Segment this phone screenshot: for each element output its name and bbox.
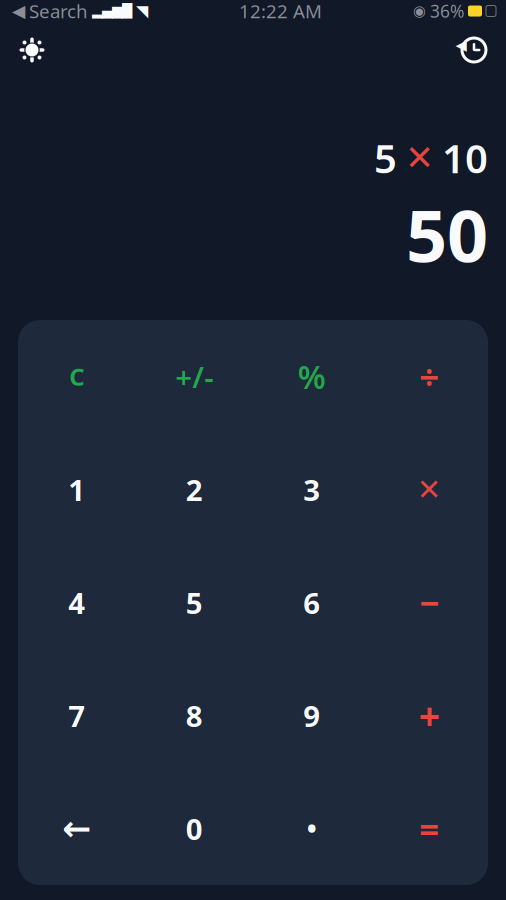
button[interactable]: Seven <box>18 659 135 772</box>
staticText: 7 <box>68 696 85 735</box>
staticText: ✕ <box>405 138 434 177</box>
staticText: Search <box>29 0 88 23</box>
staticText: + <box>419 691 440 740</box>
staticText: ✕ <box>417 473 442 506</box>
staticText: ◉ <box>413 3 426 19</box>
staticText: 36% <box>430 0 464 22</box>
staticText: 4 <box>68 583 85 622</box>
staticText: 50 <box>406 186 488 282</box>
staticText: ← <box>62 809 91 848</box>
button[interactable]: Add <box>370 659 488 772</box>
staticText: ÷ <box>419 353 439 399</box>
staticText: 10 <box>442 131 488 184</box>
button[interactable]: Backspace <box>18 772 135 885</box>
button[interactable]: Three <box>253 433 370 546</box>
button[interactable]: Equals <box>370 772 488 885</box>
staticText: ◀ <box>455 37 466 53</box>
staticText: 3 <box>303 470 320 509</box>
staticText: 5 <box>186 583 203 622</box>
staticText: 5 <box>374 131 397 184</box>
button[interactable]: History <box>450 26 498 74</box>
button[interactable]: Toggle brightness <box>8 26 56 74</box>
staticText: 12:22 AM <box>239 0 322 23</box>
button[interactable]: Zero <box>135 772 253 885</box>
button[interactable]: Four <box>18 546 135 659</box>
staticText: % <box>298 355 326 398</box>
button[interactable]: Two <box>135 433 253 546</box>
staticText: 2 <box>186 470 203 509</box>
staticText: ▂▄▆█ <box>92 3 132 18</box>
staticText: 0 <box>186 809 203 848</box>
staticText: C <box>69 361 84 392</box>
button[interactable]: Eight <box>135 659 253 772</box>
button[interactable]: Five <box>135 546 253 659</box>
button[interactable]: Clear <box>18 320 135 433</box>
button[interactable]: Toggle sign <box>135 320 253 433</box>
button[interactable]: Decimal point <box>253 772 370 885</box>
staticText: 1 <box>68 470 85 509</box>
button[interactable]: Six <box>253 546 370 659</box>
staticText: 6 <box>303 583 320 622</box>
staticText: ◀ <box>12 1 25 21</box>
staticText: 8 <box>186 696 203 735</box>
staticText: − <box>419 579 439 625</box>
staticText: = <box>419 805 439 851</box>
button[interactable]: Divide <box>370 320 488 433</box>
staticText: ◥ <box>136 2 148 20</box>
button[interactable]: Subtract <box>370 546 488 659</box>
staticText: 9 <box>303 696 320 735</box>
button[interactable]: Nine <box>253 659 370 772</box>
button[interactable]: Multiply <box>370 433 488 546</box>
staticText: • <box>307 811 317 846</box>
button[interactable]: Percent <box>253 320 370 433</box>
staticText: +/- <box>175 357 213 396</box>
button[interactable]: One <box>18 433 135 546</box>
